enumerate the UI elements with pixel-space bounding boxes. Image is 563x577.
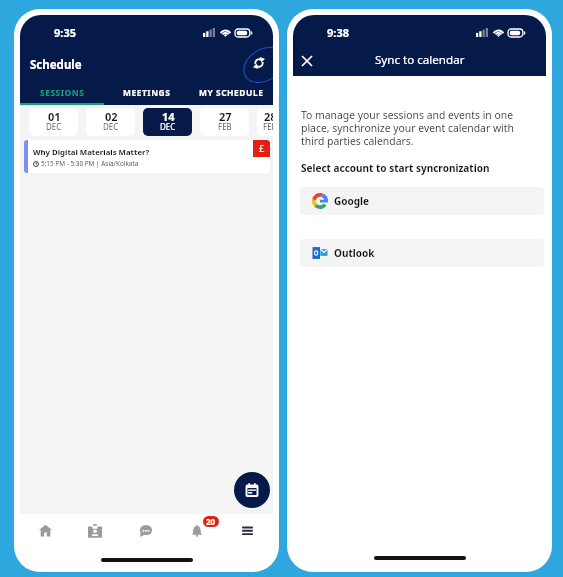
- staticText: 20: [206, 516, 216, 527]
- button[interactable]: Why Digital Materials Matter?: [24, 140, 270, 173]
- button[interactable]: My badge: [70, 514, 120, 547]
- button[interactable]: Menu: [222, 514, 273, 547]
- staticText: Sync to calendar: [375, 52, 465, 68]
- staticText: DEC: [160, 121, 176, 132]
- staticText: MEETINGS: [123, 87, 171, 98]
- staticText: £: [259, 142, 265, 155]
- button[interactable]: Add event to calendar: [234, 472, 270, 508]
- staticText: 27: [219, 109, 232, 124]
- staticText: 9:38: [327, 25, 349, 40]
- button[interactable]: Home: [20, 514, 70, 547]
- staticText: To manage your sessions and events in on…: [301, 108, 529, 148]
- button[interactable]: SESSIONS: [20, 77, 105, 105]
- staticText: Schedule: [30, 57, 82, 73]
- staticText: FEB: [263, 121, 273, 132]
- button[interactable]: 01: [29, 108, 78, 136]
- button[interactable]: 02: [86, 108, 135, 136]
- button[interactable]: Messages: [120, 514, 171, 547]
- button[interactable]: 14: [143, 108, 192, 136]
- button[interactable]: Google: [300, 187, 544, 215]
- staticText: FEB: [218, 121, 232, 132]
- staticText: SESSIONS: [40, 87, 85, 98]
- staticText: MY SCHEDULE: [199, 87, 264, 98]
- button[interactable]: Close: [296, 50, 318, 72]
- staticText: 02: [105, 109, 118, 124]
- staticText: Google: [334, 194, 370, 208]
- staticText: Why Digital Materials Matter?: [33, 147, 150, 158]
- button[interactable]: 27: [200, 108, 249, 136]
- button[interactable]: MY SCHEDULE: [189, 77, 273, 105]
- staticText: 14: [162, 109, 175, 124]
- button[interactable]: 28: [257, 108, 273, 136]
- staticText: 28: [264, 109, 273, 124]
- button[interactable]: Outlook: [300, 239, 544, 267]
- staticText: Outlook: [334, 246, 375, 260]
- staticText: 5:15 PM - 5:30 PM | Asia/Kolkata: [41, 159, 139, 168]
- staticText: DEC: [103, 121, 119, 132]
- button[interactable]: Sync: [249, 53, 269, 73]
- staticText: Select account to start syncronization: [301, 161, 490, 175]
- button[interactable]: MEETINGS: [105, 77, 189, 105]
- staticText: 01: [48, 109, 61, 124]
- button[interactable]: Notifications: [171, 514, 222, 547]
- staticText: DEC: [46, 121, 62, 132]
- staticText: 9:35: [54, 25, 76, 40]
